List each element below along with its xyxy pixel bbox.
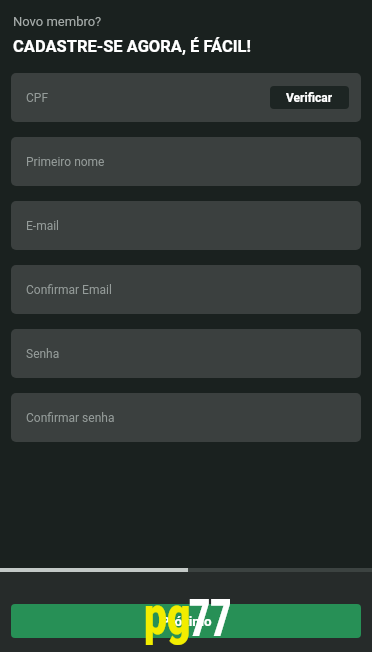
button[interactable]: CPF bbox=[11, 73, 361, 122]
staticText: Verificar bbox=[286, 91, 333, 105]
staticText: pg bbox=[144, 587, 191, 647]
staticText: Confirmar Email bbox=[26, 283, 112, 297]
staticText: Novo membro? bbox=[13, 14, 102, 29]
other: Progresso do cadastro bbox=[0, 568, 372, 572]
button[interactable]: Senha bbox=[11, 329, 361, 378]
staticText: CPF bbox=[26, 91, 49, 105]
button[interactable]: E-mail bbox=[11, 201, 361, 250]
button[interactable]: Confirmar senha bbox=[11, 393, 361, 442]
staticText: 77 bbox=[189, 589, 232, 649]
button[interactable]: Confirmar Email bbox=[11, 265, 361, 314]
staticText: Próximo bbox=[161, 613, 212, 629]
button[interactable]: Verificar bbox=[270, 86, 349, 109]
staticText: Senha bbox=[26, 347, 60, 361]
button[interactable]: Primeiro nome bbox=[11, 137, 361, 186]
staticText: Primeiro nome bbox=[26, 155, 105, 169]
staticText: CADASTRE-SE AGORA, É FÁCIL! bbox=[13, 37, 251, 56]
staticText: Confirmar senha bbox=[26, 411, 115, 425]
button[interactable]: Próximo bbox=[11, 604, 361, 638]
staticText: E-mail bbox=[26, 219, 60, 233]
